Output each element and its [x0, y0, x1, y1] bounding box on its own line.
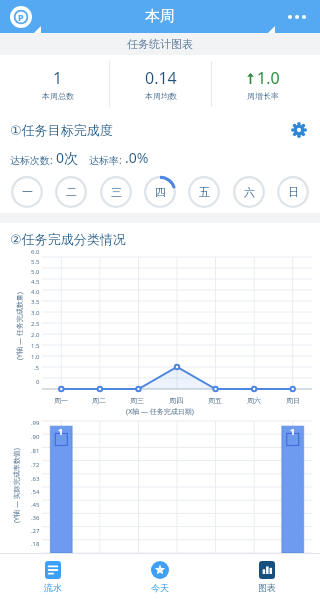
staticText: .27 — [31, 527, 40, 535]
staticText: 周六 — [247, 396, 261, 405]
button[interactable]: 图表 — [213, 554, 320, 600]
staticText: 2.5 — [31, 320, 40, 328]
staticText: 4.0 — [31, 288, 40, 296]
button[interactable]: 1 — [7, 61, 109, 107]
button[interactable]: 今天 — [106, 554, 213, 600]
staticText: 日 — [288, 185, 299, 199]
staticText: ②任务完成分类情况 — [10, 231, 126, 247]
staticText: 0.14 — [145, 67, 177, 89]
staticText: 今天 — [151, 582, 169, 593]
button[interactable]: 四 — [143, 175, 177, 209]
button[interactable]: 五 — [187, 175, 221, 209]
staticText: 一 — [22, 185, 33, 199]
staticText: .63 — [31, 475, 40, 483]
staticText: 达标次数: — [10, 153, 56, 167]
staticText: .99 — [31, 419, 40, 427]
staticText: 周日 — [286, 396, 300, 405]
staticText: 本周总数 — [42, 91, 74, 101]
staticText: 1.0 — [31, 353, 40, 361]
staticText: (Y轴 — 任务完成数量) — [15, 292, 25, 360]
staticText: 六 — [244, 185, 255, 199]
staticText: 1 — [58, 425, 64, 437]
staticText: 6.0 — [31, 248, 40, 256]
staticText: 周增长率 — [247, 91, 279, 101]
button[interactable]: More options — [284, 11, 310, 23]
staticText: .0% — [125, 148, 149, 167]
staticText: ①任务目标完成度 — [10, 122, 113, 138]
staticText: 任务统计图表 — [127, 37, 193, 51]
button[interactable]: 一 — [10, 175, 44, 209]
button[interactable]: 1.0 — [212, 61, 313, 107]
staticText: 3.5 — [31, 298, 40, 306]
staticText: 周四 — [169, 396, 183, 405]
staticText: 5.0 — [31, 268, 40, 276]
staticText: 本周 — [145, 7, 175, 26]
staticText: 周一 — [54, 396, 68, 405]
staticText: 1.5 — [31, 342, 40, 350]
button[interactable]: 二 — [54, 175, 88, 209]
staticText: .72 — [31, 461, 40, 469]
button[interactable]: 日 — [276, 175, 310, 209]
button[interactable]: App logo — [10, 6, 32, 28]
staticText: 五 — [199, 185, 210, 199]
staticText: .5 — [34, 364, 40, 372]
staticText: 周五 — [208, 396, 222, 405]
staticText: 4.5 — [31, 278, 40, 286]
staticText: 四 — [155, 185, 166, 199]
button[interactable]: 三 — [99, 175, 133, 209]
staticText: 5.5 — [31, 258, 40, 266]
staticText: 流水 — [44, 582, 62, 593]
staticText: 本周均数 — [145, 91, 177, 101]
staticText: 1.0 — [257, 67, 280, 89]
staticText: 0次 — [56, 148, 79, 167]
staticText: 图表 — [258, 582, 276, 593]
staticText: 1 — [53, 67, 63, 89]
button[interactable]: 六 — [232, 175, 266, 209]
staticText: (Y轴 — 实际完成率数值) — [12, 448, 22, 523]
staticText: .18 — [31, 540, 40, 548]
staticText: 三 — [111, 185, 122, 199]
staticText: 1 — [290, 425, 296, 437]
staticText: .54 — [31, 488, 40, 496]
staticText: 达标率: — [89, 153, 125, 167]
staticText: 2.0 — [31, 331, 40, 339]
staticText: 二 — [66, 185, 77, 199]
staticText: P — [18, 11, 24, 23]
staticText: .90 — [31, 433, 40, 441]
staticText: (X轴 — 任务完成日期) — [126, 407, 194, 417]
button[interactable]: Settings — [288, 119, 310, 141]
staticText: .45 — [31, 501, 40, 509]
button[interactable]: 0.14 — [110, 61, 211, 107]
staticText: 周二 — [92, 396, 106, 405]
staticText: .81 — [31, 447, 40, 455]
button[interactable]: 流水 — [0, 554, 106, 600]
staticText: 3.0 — [31, 309, 40, 317]
staticText: .36 — [31, 514, 40, 522]
staticText: 周三 — [130, 396, 144, 405]
staticText: 0 — [36, 378, 40, 386]
